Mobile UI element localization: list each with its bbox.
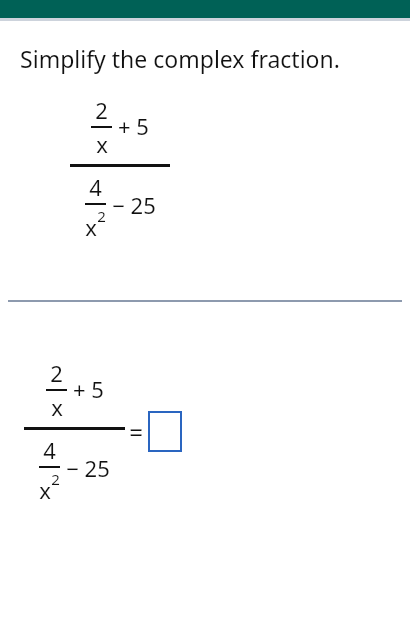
button[interactable]: Answer entry box — [148, 411, 182, 452]
staticText: − 25 — [112, 190, 156, 220]
staticText: = — [129, 415, 143, 448]
staticText: x — [39, 475, 51, 505]
staticText: − 25 — [66, 453, 110, 483]
staticText: x — [51, 392, 63, 422]
staticText: x — [96, 129, 108, 159]
staticText: 2 — [50, 358, 63, 388]
staticText: 2 — [97, 206, 106, 226]
staticText: 4 — [89, 172, 102, 202]
staticText: 2 — [95, 95, 108, 125]
staticText: + 5 — [118, 111, 149, 141]
staticText: x — [85, 212, 97, 242]
staticText: + 5 — [73, 374, 104, 404]
staticText: 2 — [51, 469, 60, 489]
staticText: Simplify the complex fraction. — [20, 43, 340, 74]
staticText: 4 — [43, 435, 56, 465]
